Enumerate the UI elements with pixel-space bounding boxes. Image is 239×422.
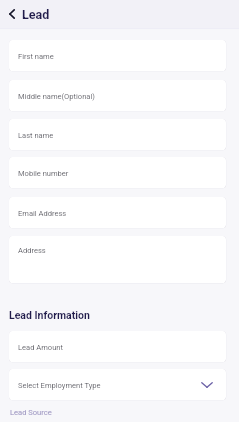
- button[interactable]: Select Employment Type: [9, 369, 226, 400]
- staticText: Lead Amount: [18, 343, 63, 352]
- button[interactable]: Lead Amount: [9, 331, 226, 362]
- staticText: Last name: [18, 131, 54, 140]
- staticText: First name: [18, 52, 54, 61]
- button[interactable]: Middle name(Optional): [9, 80, 226, 111]
- button[interactable]: Mobile number: [9, 157, 226, 188]
- button[interactable]: Back: [5, 7, 19, 21]
- staticText: Select Employment Type: [18, 381, 101, 390]
- button[interactable]: Address: [9, 236, 226, 283]
- button[interactable]: Last name: [9, 119, 226, 150]
- staticText: Middle name(Optional): [18, 92, 95, 101]
- button[interactable]: Email Address: [9, 197, 226, 228]
- staticText: Address: [18, 246, 46, 255]
- staticText: Email Address: [18, 209, 67, 218]
- other: Expand dropdown: [201, 382, 213, 388]
- staticText: Lead Information: [9, 309, 90, 321]
- staticText: Lead Source: [10, 408, 52, 417]
- button[interactable]: First name: [9, 40, 226, 71]
- staticText: Lead: [22, 7, 50, 22]
- staticText: Mobile number: [18, 169, 69, 178]
